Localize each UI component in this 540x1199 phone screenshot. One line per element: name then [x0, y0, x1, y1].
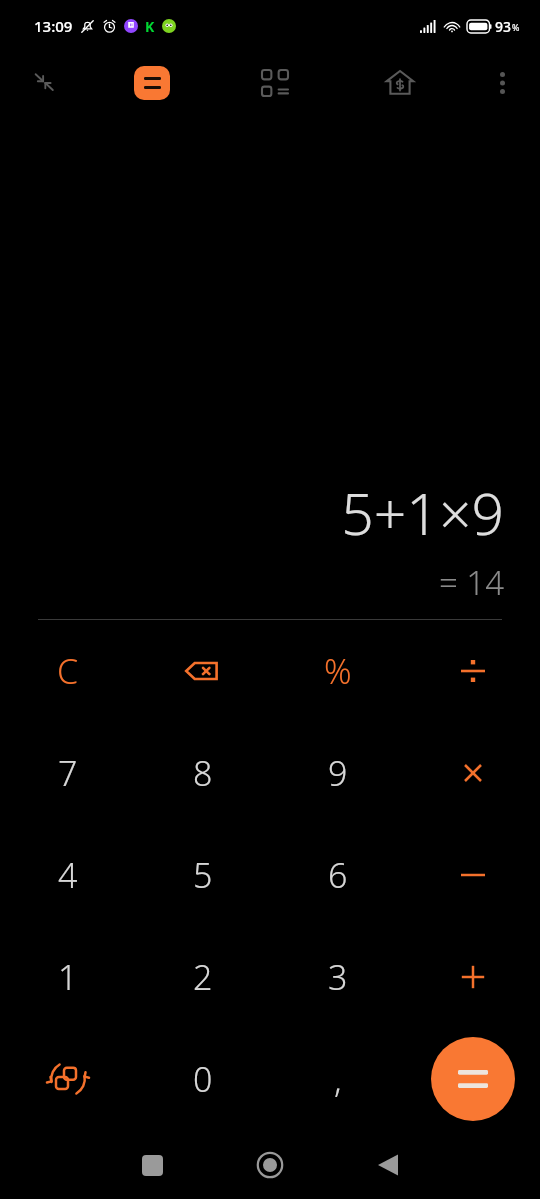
staticText: 5: [193, 852, 213, 898]
button[interactable]: More options: [480, 61, 524, 105]
button[interactable]: Home: [246, 1141, 294, 1189]
button[interactable]: Multiply: [405, 722, 540, 824]
staticText: 8: [193, 750, 213, 796]
staticText: 2: [193, 954, 213, 1000]
button[interactable]: ,: [270, 1028, 405, 1130]
button[interactable]: 9: [270, 722, 405, 824]
button[interactable]: Collapse: [20, 59, 68, 107]
button[interactable]: 8: [135, 722, 270, 824]
button[interactable]: 0: [135, 1028, 270, 1130]
staticText: 93: [495, 17, 512, 36]
staticText: 4: [58, 852, 78, 898]
staticText: %: [324, 648, 352, 694]
staticText: C: [57, 648, 79, 694]
button[interactable]: Divide: [405, 620, 540, 722]
button[interactable]: 7: [0, 722, 135, 824]
staticText: ,: [334, 1056, 342, 1102]
staticText: %: [512, 21, 520, 33]
button[interactable]: Units: [250, 58, 300, 108]
button[interactable]: Convert: [0, 1028, 135, 1130]
button[interactable]: Loan calculator: [374, 57, 426, 109]
button[interactable]: 5: [135, 824, 270, 926]
button[interactable]: 6: [270, 824, 405, 926]
staticText: K: [145, 17, 155, 36]
button[interactable]: Backspace: [135, 620, 270, 722]
staticText: 9: [328, 750, 348, 796]
staticText: = 14: [438, 560, 504, 605]
staticText: 0: [193, 1056, 213, 1102]
button[interactable]: Back: [364, 1141, 412, 1189]
button[interactable]: 4: [0, 824, 135, 926]
button[interactable]: Plus: [405, 926, 540, 1028]
staticText: 3: [328, 954, 348, 1000]
staticText: 13:09: [34, 16, 73, 36]
button[interactable]: 2: [135, 926, 270, 1028]
button[interactable]: 3: [270, 926, 405, 1028]
button[interactable]: %: [270, 620, 405, 722]
button[interactable]: Equals: [405, 1028, 540, 1130]
staticText: 6: [328, 852, 348, 898]
staticText: 1: [58, 954, 78, 1000]
button[interactable]: C: [0, 620, 135, 722]
staticText: 5+1×9: [341, 474, 504, 552]
button[interactable]: 1: [0, 926, 135, 1028]
button[interactable]: Recents: [128, 1141, 176, 1189]
button[interactable]: Calculator mode: [126, 57, 178, 109]
button[interactable]: Minus: [405, 824, 540, 926]
staticText: 7: [58, 750, 78, 796]
